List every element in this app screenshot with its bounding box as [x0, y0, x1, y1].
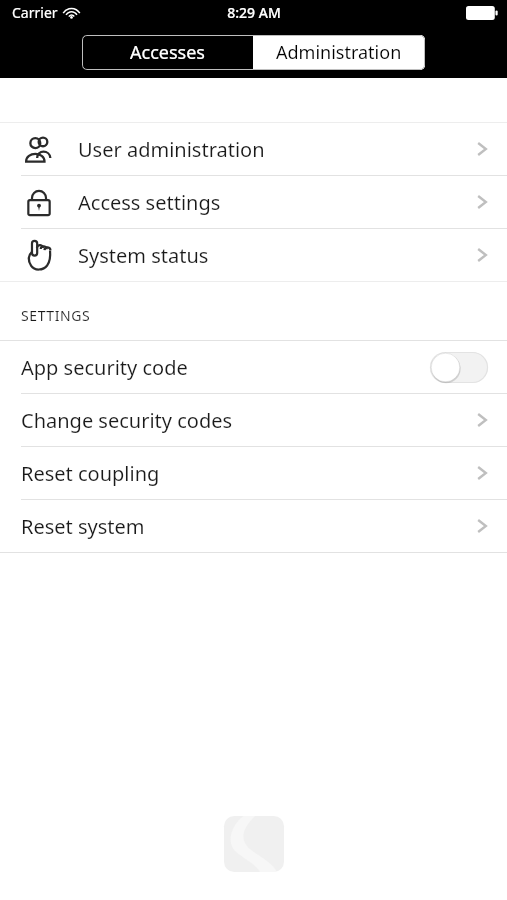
- staticText: Carrier: [12, 3, 58, 22]
- button[interactable]: System status: [0, 229, 507, 281]
- staticText: Reset coupling: [21, 460, 160, 487]
- staticText: Change security codes: [21, 407, 233, 434]
- staticText: 8:29 AM: [227, 3, 281, 22]
- staticText: App security code: [21, 354, 188, 381]
- button[interactable]: Reset system: [0, 500, 507, 552]
- button[interactable]: App security code toggle: [430, 352, 488, 383]
- staticText: Reset system: [21, 513, 145, 540]
- staticText: Accesses: [130, 40, 205, 65]
- staticText: SETTINGS: [21, 306, 91, 325]
- button[interactable]: Accesses: [82, 35, 253, 70]
- button[interactable]: User administration: [0, 123, 507, 175]
- staticText: System status: [78, 242, 209, 269]
- button[interactable]: Reset coupling: [0, 447, 507, 499]
- button[interactable]: Change security codes: [0, 394, 507, 446]
- staticText: Access settings: [78, 189, 221, 216]
- button[interactable]: Administration: [253, 35, 425, 70]
- button[interactable]: Access settings: [0, 176, 507, 228]
- staticText: User administration: [78, 136, 265, 163]
- staticText: Administration: [276, 40, 402, 65]
- button[interactable]: App security code: [0, 341, 507, 393]
